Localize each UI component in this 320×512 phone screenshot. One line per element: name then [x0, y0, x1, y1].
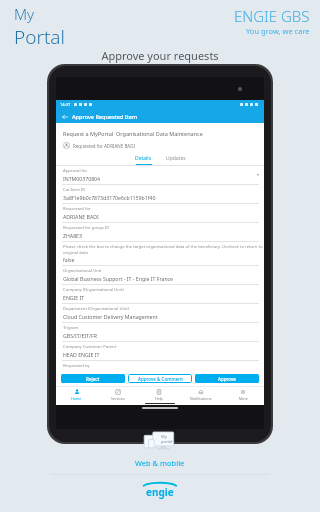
staticText: Cat Item ID: [63, 187, 86, 193]
staticText: engie: [146, 485, 174, 499]
button[interactable]: Services: [97, 387, 138, 402]
button[interactable]: Reject: [61, 374, 125, 383]
button[interactable]: Please check the box to change the targe…: [56, 242, 264, 266]
button[interactable]: Organisational Unit: [56, 266, 264, 285]
staticText: ENGIE GBS: [234, 6, 310, 26]
button[interactable]: Notifications: [180, 387, 222, 402]
button[interactable]: Trigram: [56, 323, 264, 342]
staticText: false: [63, 256, 75, 263]
staticText: My: [14, 4, 35, 24]
button[interactable]: Approve & Comment: [128, 374, 192, 383]
button[interactable]: Approve: [195, 374, 259, 383]
button[interactable]: Approval for: [56, 166, 264, 185]
staticText: ADRIANE BADI: [63, 213, 99, 220]
button[interactable]: Details: [128, 155, 159, 165]
staticText: Requested for ADRIANE BADI: [73, 143, 136, 149]
staticText: Approve & Comment: [138, 376, 183, 382]
staticText: Web & mobile: [135, 458, 185, 468]
staticText: 3a8f1e9b0c7873d3170e6cb1159b1f40: [63, 194, 156, 201]
staticText: ZHA8E3: [63, 232, 82, 239]
staticText: Requested for: [63, 206, 91, 212]
staticText: Home: [71, 396, 82, 401]
staticText: GBS/IT/EIT/FR: [63, 332, 97, 339]
button[interactable]: Requested by: [56, 361, 264, 371]
staticText: Services: [111, 396, 125, 401]
staticText: Details: [135, 155, 152, 162]
staticText: Organisational Unit: [63, 268, 102, 274]
button[interactable]: ENGIE logo: [136, 482, 184, 500]
button[interactable]: Home: [56, 387, 97, 402]
button[interactable]: Web and mobile: [142, 431, 178, 455]
staticText: Requested by: [63, 363, 90, 369]
staticText: You grow, we care: [246, 26, 310, 36]
staticText: Help: [155, 396, 163, 401]
staticText: portal: [161, 439, 173, 444]
staticText: My: [161, 434, 167, 439]
staticText: Cloud Customer Delivery Management: [63, 313, 158, 320]
button[interactable]: Updates: [159, 155, 193, 165]
button[interactable]: Requested for group ID: [56, 223, 264, 242]
staticText: Company (Organisational Unit): [63, 287, 124, 293]
staticText: Notifications: [190, 396, 212, 401]
staticText: HEAD ENGIE IT: [63, 351, 100, 358]
staticText: ▾: [257, 172, 260, 177]
staticText: Department (Organisational Unit): [63, 306, 129, 312]
button[interactable]: More: [222, 387, 264, 402]
staticText: Approve your requests: [0, 48, 320, 63]
staticText: Approve: [218, 376, 236, 382]
button[interactable]: Requested for: [56, 204, 264, 223]
button[interactable]: Department (Organisational Unit): [56, 304, 264, 323]
staticText: Trigram: [63, 325, 79, 331]
staticText: Requested for group ID: [63, 225, 110, 231]
staticText: Reject: [86, 376, 100, 382]
staticText: More: [239, 396, 248, 401]
staticText: Please check the box to change the targe…: [63, 244, 264, 255]
staticText: Approve Requested Item: [72, 113, 138, 120]
staticText: Global Business Support - IT - Engie IT …: [63, 275, 174, 282]
button[interactable]: Cat Item ID: [56, 185, 264, 204]
staticText: Company Customer Parent: [63, 344, 117, 350]
button[interactable]: Back: [60, 112, 69, 121]
button[interactable]: Company (Organisational Unit): [56, 285, 264, 304]
staticText: Portal: [14, 24, 65, 44]
staticText: Request a MyPortal Organisational Data M…: [63, 130, 203, 137]
button[interactable]: Help: [138, 387, 180, 402]
staticText: ENGIE IT: [63, 294, 85, 301]
staticText: 14:37: [60, 102, 71, 107]
staticText: INTM00370804: [63, 175, 101, 182]
staticText: Updates: [166, 155, 186, 162]
button[interactable]: Company Customer Parent: [56, 342, 264, 361]
staticText: Approval for: [63, 168, 88, 174]
